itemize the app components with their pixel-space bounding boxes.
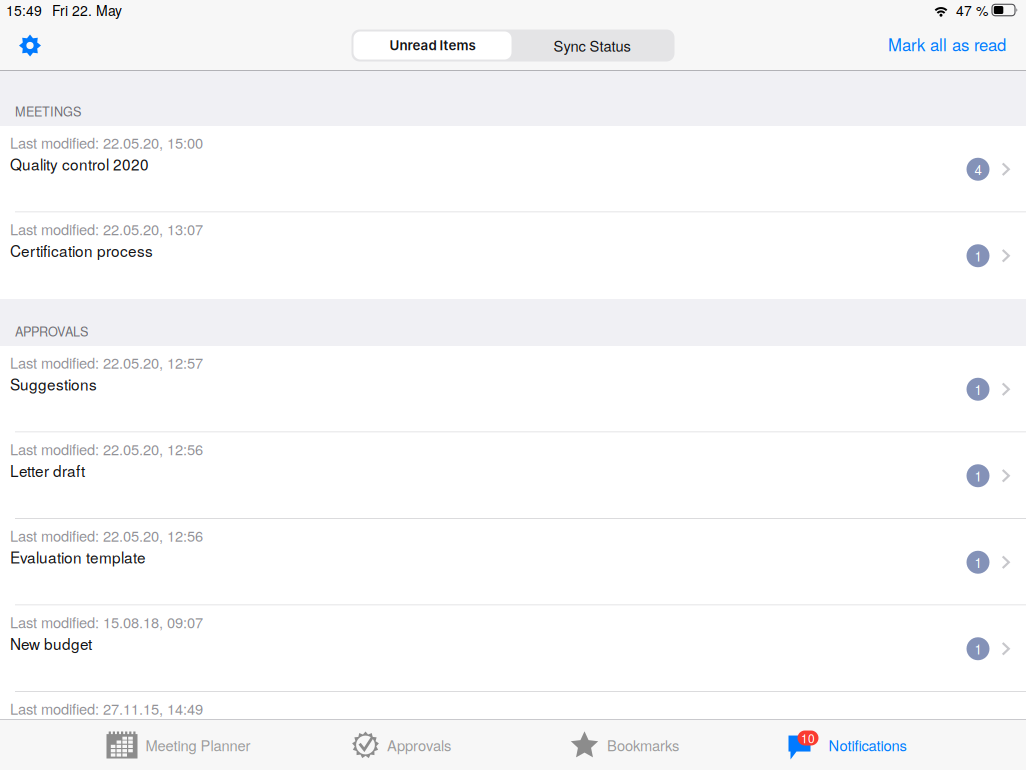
staticText: Last modified: 22.05.20, 12:56 xyxy=(10,525,203,546)
staticText: Certification process xyxy=(10,239,153,261)
button[interactable]: Last modified: 22.05.20, 12:56 xyxy=(0,519,1026,605)
button[interactable]: Last modified: 22.05.20, 13:07 xyxy=(0,212,1026,299)
staticText: Quality control 2020 xyxy=(10,153,149,175)
staticText: 1 xyxy=(974,466,981,485)
staticText: Last modified: 22.05.20, 15:00 xyxy=(10,132,203,153)
staticText: 1 xyxy=(974,553,981,572)
button[interactable]: 10 xyxy=(736,720,959,770)
staticText: 10 xyxy=(801,729,815,747)
button[interactable]: Last modified: 22.05.20, 12:57 xyxy=(0,346,1026,432)
button[interactable]: Last modified: 22.05.20, 12:56 xyxy=(0,432,1026,519)
button[interactable]: Sync Status xyxy=(511,31,672,59)
button[interactable]: Last modified: 15.08.18, 09:07 xyxy=(0,605,1026,692)
staticText: Meeting Planner xyxy=(145,734,250,755)
staticText: Last modified: 27.11.15, 14:49 xyxy=(10,698,203,719)
staticText: APPROVALS xyxy=(15,322,88,340)
staticText: Notifications xyxy=(828,734,906,755)
staticText: Unread Items xyxy=(389,37,475,53)
button[interactable]: Unread Items xyxy=(353,31,511,59)
staticText: Letter draft xyxy=(10,459,85,481)
staticText: Fri 22. May xyxy=(52,0,122,20)
staticText: Bookmarks xyxy=(607,734,679,755)
staticText: 1 xyxy=(974,380,981,399)
button[interactable]: Last modified: 27.11.15, 14:49 xyxy=(0,692,1026,770)
button[interactable]: Bookmarks xyxy=(513,720,736,770)
staticText: 1 xyxy=(974,246,981,265)
staticText: Suggestions xyxy=(10,373,97,395)
staticText: Evaluation template xyxy=(10,546,146,568)
button[interactable]: Last modified: 22.05.20, 15:00 xyxy=(0,126,1026,212)
staticText: Sync Status xyxy=(553,35,630,56)
staticText: Last modified: 15.08.18, 09:07 xyxy=(10,611,203,632)
staticText: MEETINGS xyxy=(15,102,81,120)
button[interactable]: Meeting Planner xyxy=(67,720,290,770)
staticText: Mark all as read xyxy=(888,32,1006,56)
staticText: 1 xyxy=(974,639,981,658)
button[interactable]: Settings xyxy=(0,21,55,70)
staticText: New budget xyxy=(10,632,92,654)
staticText: 15:49 xyxy=(6,0,42,20)
staticText: Annual report xyxy=(10,719,105,741)
staticText: 4 xyxy=(974,160,981,179)
staticText: 47 % xyxy=(956,0,988,20)
staticText: Last modified: 22.05.20, 13:07 xyxy=(10,218,203,239)
staticText: Approvals xyxy=(387,734,451,755)
staticText: Last modified: 22.05.20, 12:57 xyxy=(10,352,203,373)
button[interactable]: Approvals xyxy=(290,720,513,770)
button[interactable]: Mark all as read xyxy=(874,21,1026,70)
staticText: Last modified: 22.05.20, 12:56 xyxy=(10,438,203,459)
